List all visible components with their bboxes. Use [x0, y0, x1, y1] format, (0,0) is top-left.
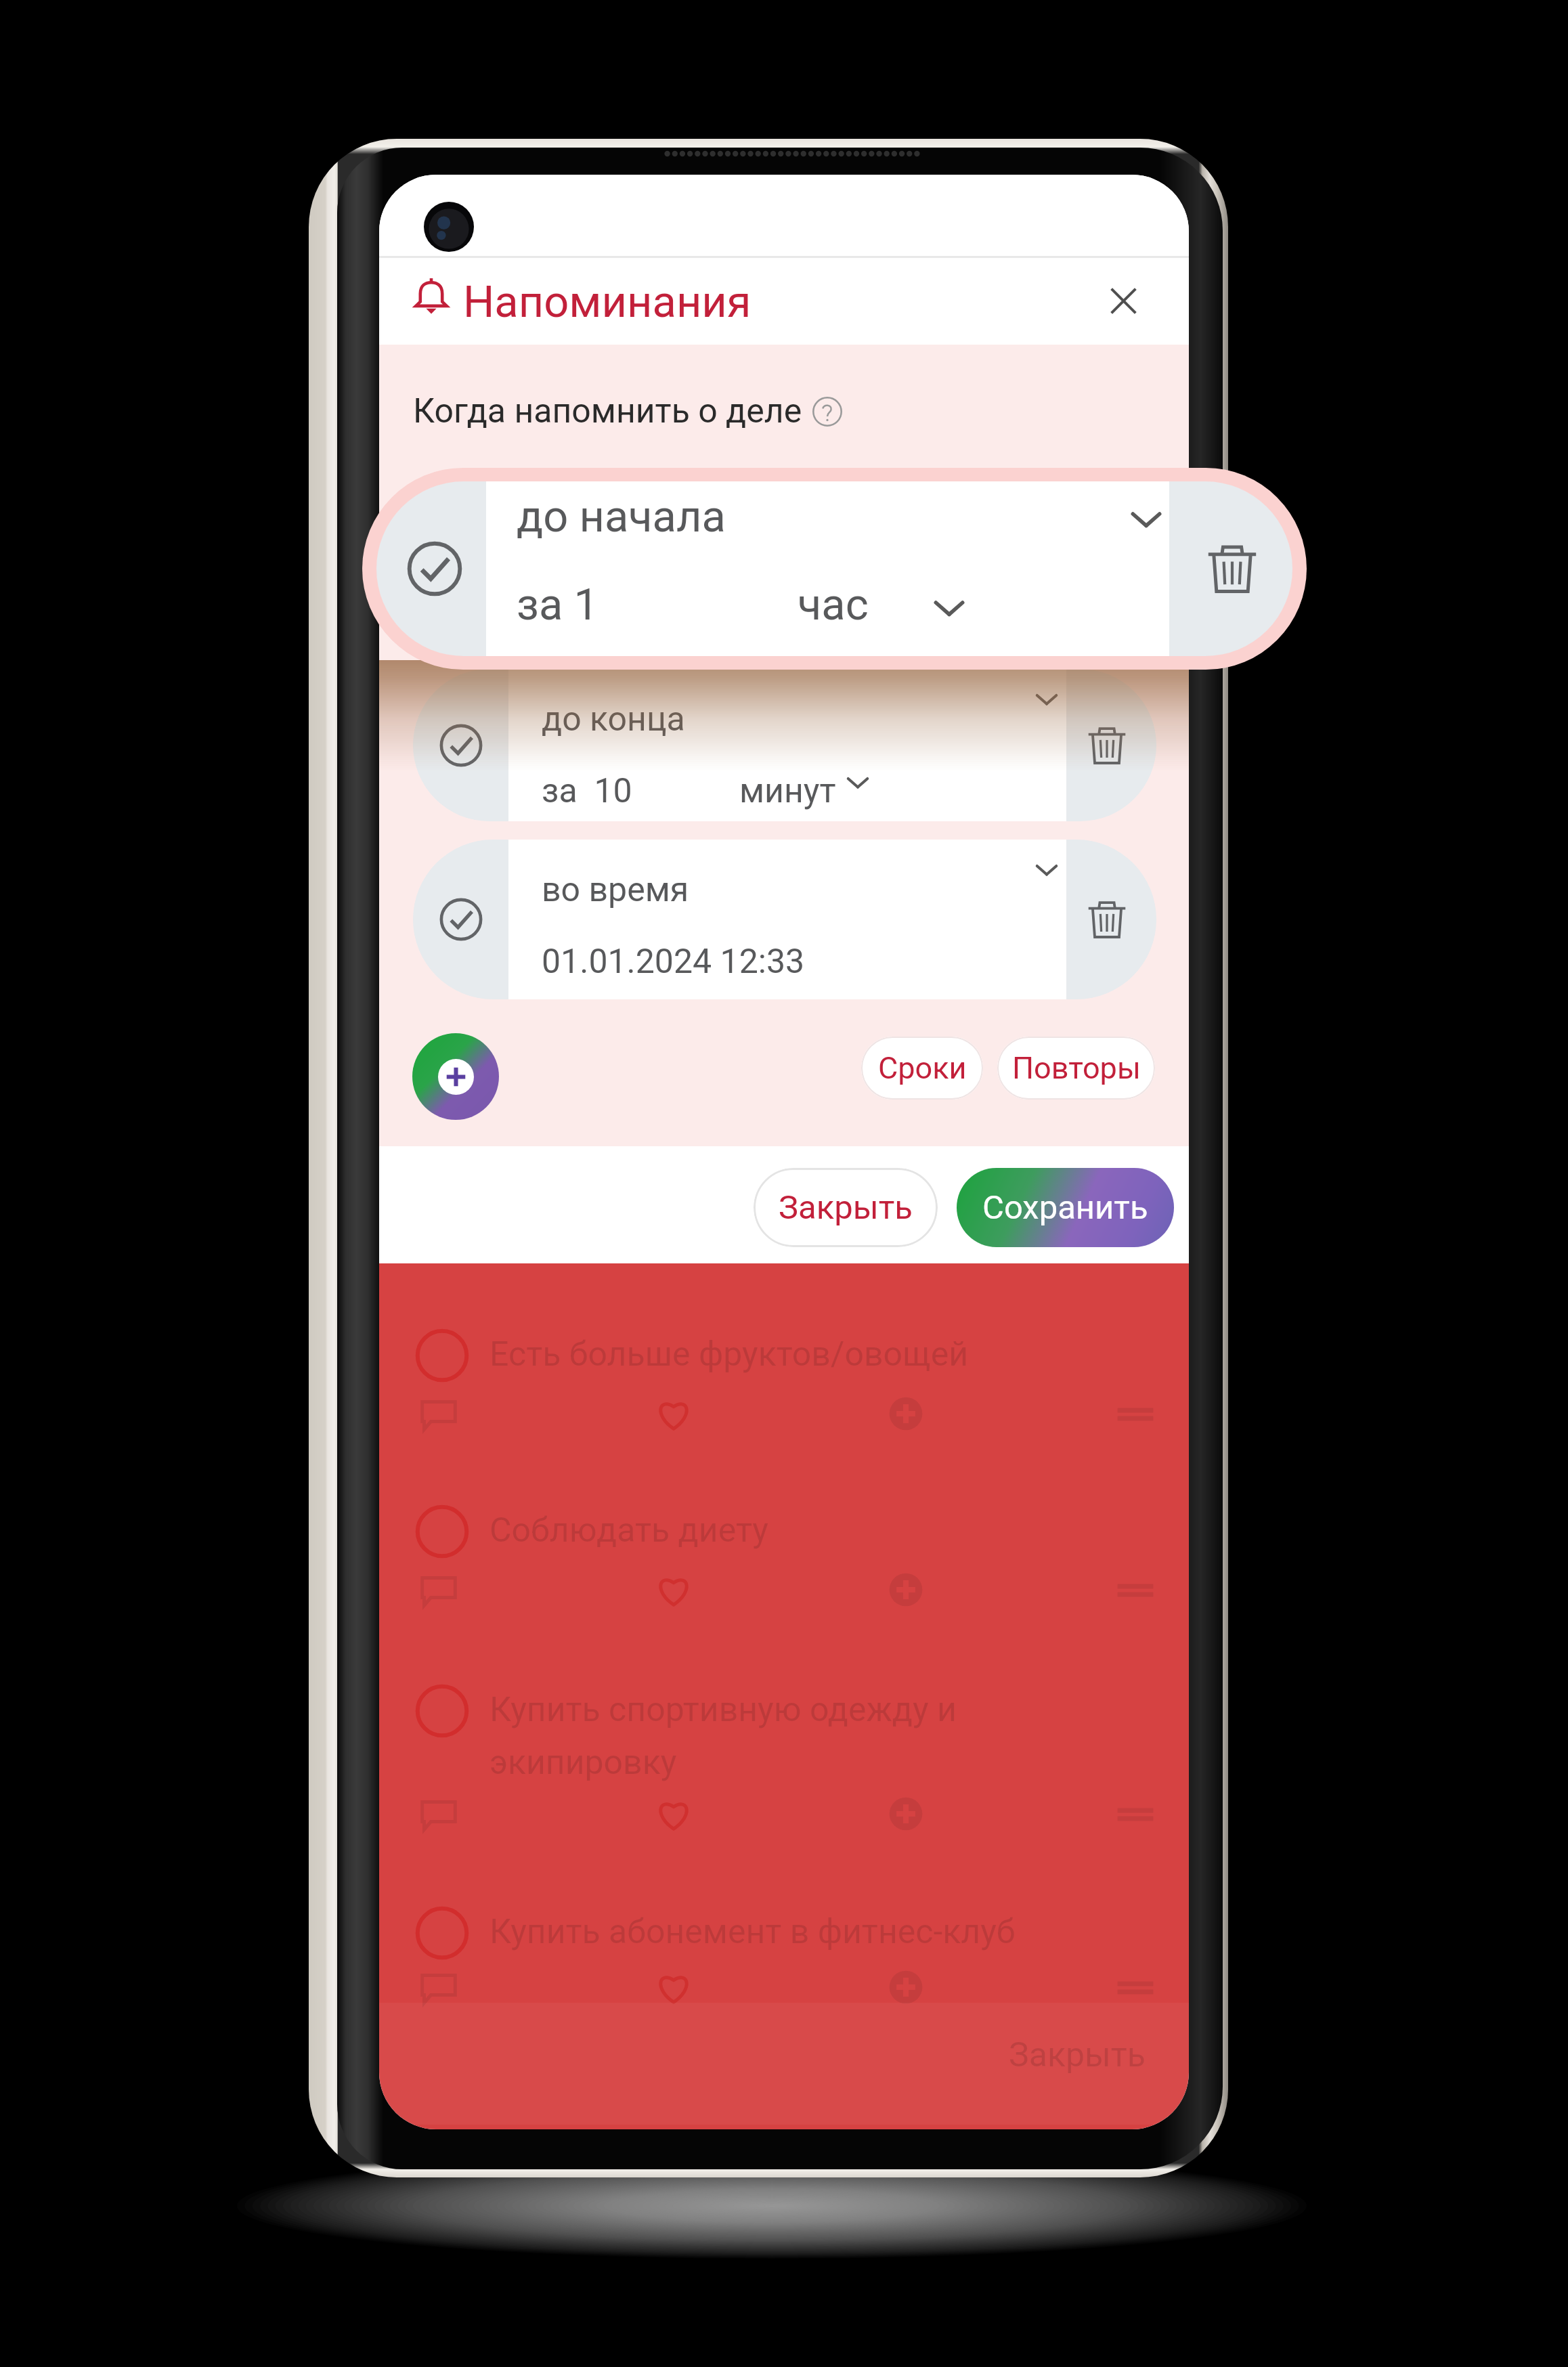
- staticText: час: [798, 579, 869, 630]
- staticText: Когда напомнить о деле: [413, 391, 802, 431]
- staticText: за 10: [542, 771, 632, 811]
- button[interactable]: до конца: [413, 669, 1156, 821]
- button[interactable]: Сроки: [861, 1037, 983, 1100]
- staticText: за 1: [517, 579, 599, 630]
- button[interactable]: Повторы: [997, 1037, 1155, 1100]
- staticText: Закрыть: [1009, 2035, 1146, 2075]
- button[interactable]: Закрыть: [754, 1168, 938, 1247]
- staticText: во время: [542, 870, 689, 910]
- staticText: минут: [739, 771, 836, 811]
- staticText: Напоминания: [463, 276, 752, 328]
- staticText: Повторы: [1012, 1050, 1141, 1086]
- staticText: Купить спортивную одежду и: [489, 1690, 957, 1730]
- staticText: Закрыть: [779, 1188, 913, 1227]
- button[interactable]: Delete: [1078, 890, 1136, 949]
- button[interactable]: Close: [1088, 265, 1158, 336]
- staticText: Сроки: [878, 1050, 967, 1086]
- staticText: Есть больше фруктов/овощей: [489, 1334, 969, 1374]
- staticText: до конца: [542, 699, 685, 739]
- button[interactable]: во время: [413, 840, 1156, 999]
- button[interactable]: Delete: [1078, 716, 1136, 775]
- button[interactable]: Сохранить: [957, 1168, 1174, 1247]
- staticText: Купить абонемент в фитнес-клуб: [489, 1912, 1016, 1952]
- staticText: Сохранить: [982, 1188, 1148, 1227]
- button[interactable]: Delete: [1198, 535, 1266, 603]
- button[interactable]: до начала: [362, 468, 1307, 670]
- staticText: 01.01.2024 12:33: [542, 942, 805, 982]
- staticText: до начала: [517, 491, 726, 542]
- button[interactable]: Add reminder: [412, 1033, 499, 1120]
- staticText: экипировку: [489, 1743, 677, 1783]
- staticText: Соблюдать диету: [489, 1511, 768, 1550]
